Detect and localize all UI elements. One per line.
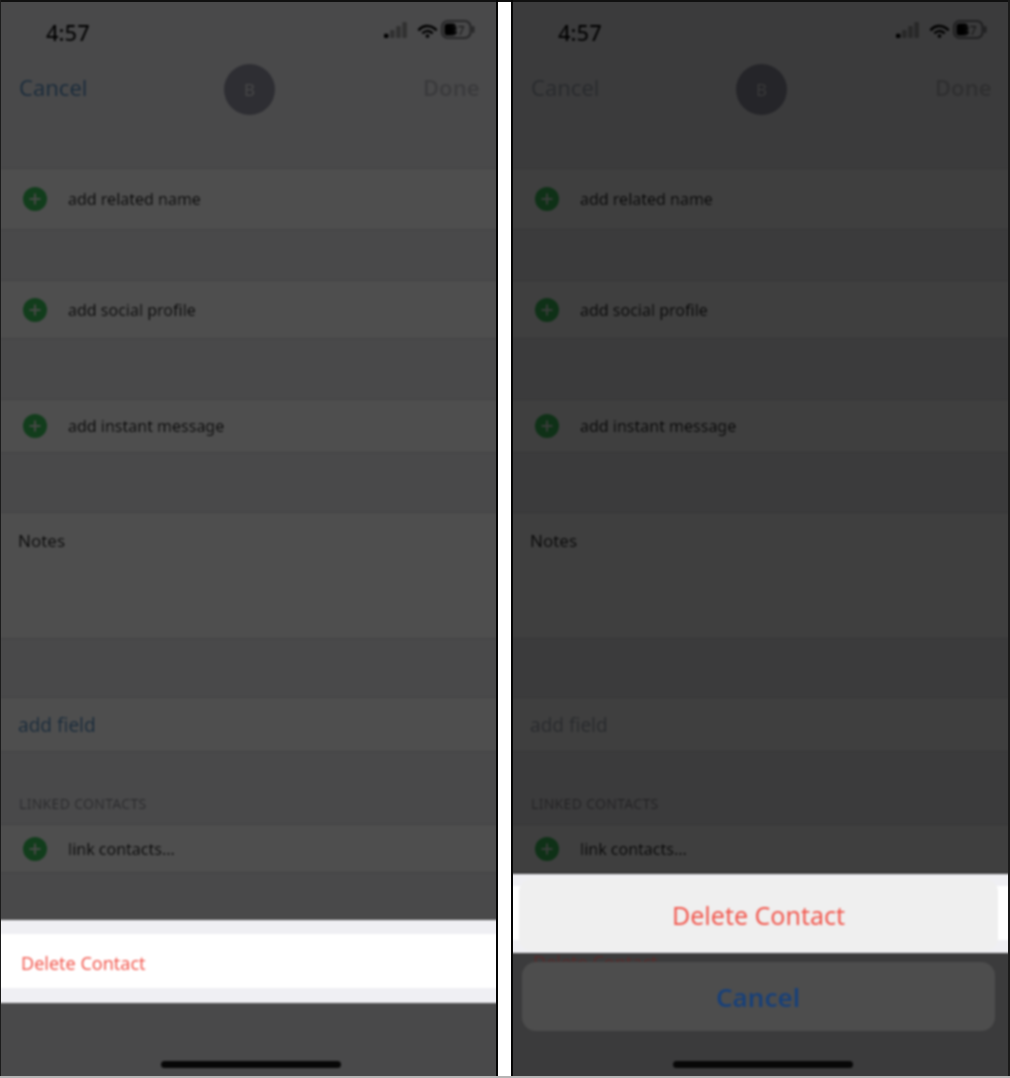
staticText: add social profile: [68, 299, 196, 321]
button[interactable]: Done: [935, 72, 992, 102]
staticText: add related name: [580, 188, 713, 210]
staticText: add social profile: [580, 299, 708, 321]
button[interactable]: add related name: [1, 168, 496, 230]
staticText: B: [244, 78, 256, 101]
staticText: LINKED CONTACTS: [531, 794, 659, 813]
button[interactable]: add field: [1, 697, 496, 752]
staticText: 37: [963, 22, 977, 38]
staticText: B: [756, 78, 768, 101]
button[interactable]: Delete Contact: [519, 879, 998, 951]
button[interactable]: add instant message: [1, 399, 496, 453]
staticText: add instant message: [68, 415, 225, 437]
staticText: LINKED CONTACTS: [19, 794, 147, 813]
staticText: link contacts...: [580, 838, 687, 860]
staticText: 4:57: [558, 17, 602, 47]
button[interactable]: link contacts...: [513, 824, 1008, 873]
staticText: add field: [530, 712, 608, 738]
button[interactable]: Contact photo: [224, 64, 275, 115]
button[interactable]: add social profile: [513, 280, 1008, 339]
staticText: 4:57: [46, 17, 90, 47]
staticText: Delete Contact: [21, 951, 146, 976]
staticText: Notes: [18, 529, 66, 552]
button[interactable]: add social profile: [1, 280, 496, 339]
button[interactable]: link contacts...: [1, 824, 496, 873]
button[interactable]: Done: [423, 72, 480, 102]
staticText: Notes: [530, 529, 578, 552]
button[interactable]: Contact photo: [736, 64, 787, 115]
button[interactable]: Cancel: [19, 72, 88, 102]
staticText: add instant message: [580, 415, 737, 437]
button[interactable]: Cancel: [522, 962, 995, 1031]
button[interactable]: add related name: [513, 168, 1008, 230]
button[interactable]: Cancel: [531, 72, 600, 102]
staticText: 37: [451, 22, 465, 38]
staticText: Delete Contact: [533, 950, 658, 975]
staticText: Cancel: [716, 979, 801, 1014]
button[interactable]: add instant message: [513, 399, 1008, 453]
button[interactable]: Delete Contact: [1, 920, 496, 1003]
staticText: add related name: [68, 188, 201, 210]
staticText: link contacts...: [68, 838, 175, 860]
staticText: add field: [18, 712, 96, 738]
staticText: Delete Contact: [672, 898, 845, 932]
